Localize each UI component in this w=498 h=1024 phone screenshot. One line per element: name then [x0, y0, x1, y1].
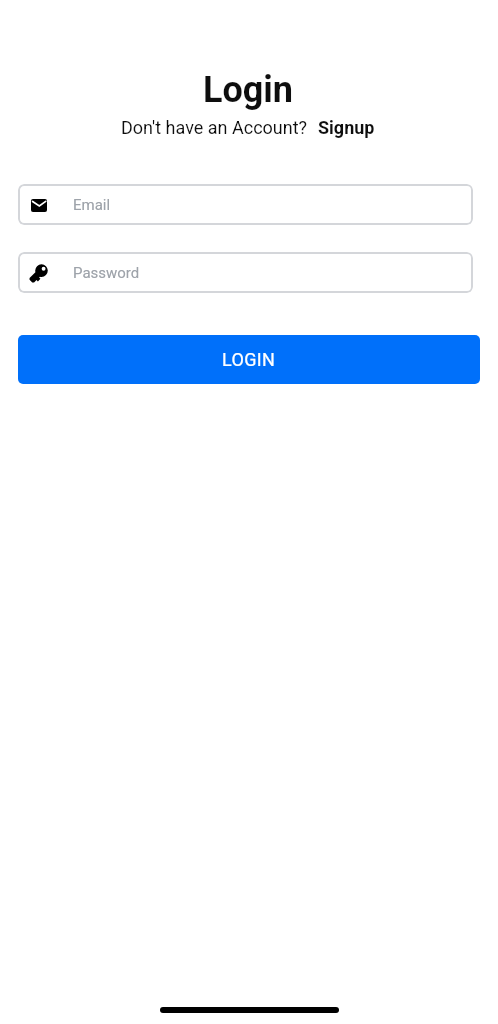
- other: Password: [28, 262, 50, 284]
- staticText: Signup: [318, 117, 375, 138]
- staticText: Don't have an Account?: [121, 117, 308, 138]
- staticText: Password: [73, 264, 140, 282]
- button[interactable]: Email: [18, 184, 473, 225]
- button[interactable]: Password: [18, 252, 473, 293]
- staticText: LOGIN: [222, 349, 276, 370]
- staticText: Email: [73, 196, 111, 214]
- staticText: Login: [0, 69, 496, 111]
- button[interactable]: LOGIN: [18, 335, 480, 384]
- other: Email: [31, 199, 47, 212]
- button[interactable]: Signup: [318, 117, 375, 138]
